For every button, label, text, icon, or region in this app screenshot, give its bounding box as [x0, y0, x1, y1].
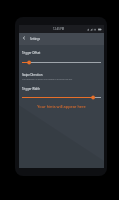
- staticText: Settings: [30, 37, 40, 41]
- staticText: 12:45 PM: [53, 27, 65, 31]
- staticText: Trigger Width: [22, 87, 40, 91]
- staticText: Trigger Offset: [22, 51, 41, 55]
- button[interactable]: Slider: [19, 59, 104, 66]
- staticText: Your hints will appear here: [19, 104, 104, 109]
- button[interactable]: Slider: [19, 94, 104, 101]
- staticText: The direction in which you swipe to acti…: [22, 78, 73, 81]
- staticText: Swipe Direction: [22, 73, 43, 77]
- button[interactable]: Back: [19, 33, 29, 43]
